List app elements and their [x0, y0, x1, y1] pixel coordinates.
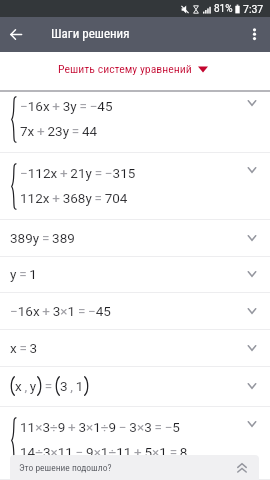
- staticText: 7:37: [243, 3, 264, 15]
- staticText: x , y: [15, 378, 37, 394]
- button[interactable]: 389y = 389: [0, 220, 270, 257]
- button[interactable]: x = 3: [0, 330, 270, 367]
- staticText: 7x + 23y = 44: [20, 123, 98, 139]
- staticText: x = 3: [10, 340, 38, 356]
- button[interactable]: −16x + 3y = −45: [0, 92, 270, 153]
- staticText: 81%: [214, 3, 233, 15]
- button[interactable]: Это решение подошло?: [10, 455, 259, 480]
- staticText: y = 1: [10, 266, 37, 282]
- staticText: −112x + 21y = −315: [20, 165, 136, 181]
- staticText: 14÷3×11 − 9×1÷11 + 5×1 = 8: [20, 444, 188, 460]
- staticText: 389y = 389: [10, 230, 75, 246]
- button[interactable]: x , y: [0, 367, 270, 407]
- staticText: 112x + 368y = 704: [20, 190, 128, 206]
- button[interactable]: Решить систему уравнений: [0, 52, 270, 92]
- button[interactable]: 11×3÷9 + 3×1÷9 − 3×3 = −5: [0, 407, 270, 480]
- button[interactable]: Назад: [0, 18, 32, 50]
- staticText: Шаги решения: [51, 26, 130, 41]
- button[interactable]: y = 1: [0, 257, 270, 293]
- staticText: =: [42, 378, 55, 394]
- staticText: −16x + 3×1 = −45: [10, 303, 111, 319]
- button[interactable]: −112x + 21y = −315: [0, 153, 270, 220]
- staticText: 3 , 1: [60, 378, 84, 394]
- button[interactable]: −16x + 3×1 = −45: [0, 293, 270, 330]
- staticText: −16x + 3y = −45: [20, 98, 113, 114]
- staticText: Это решение подошло?: [19, 462, 112, 473]
- button[interactable]: Ещё: [238, 18, 270, 50]
- staticText: Решить систему уравнений: [58, 62, 192, 76]
- staticText: 11×3÷9 + 3×1÷9 − 3×3 = −5: [20, 419, 180, 435]
